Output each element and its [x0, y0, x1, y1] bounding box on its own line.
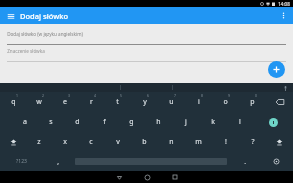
staticText: p: [250, 97, 255, 107]
staticText: i: [198, 97, 200, 107]
staticText: 9: [228, 93, 230, 98]
staticText: s: [49, 117, 53, 127]
button[interactable]: v: [104, 132, 131, 152]
staticText: b: [142, 137, 147, 147]
button[interactable]: Shift: [266, 132, 293, 152]
staticText: 7: [174, 93, 176, 98]
staticText: 1: [16, 93, 18, 98]
staticText: n: [169, 137, 174, 147]
button[interactable]: 8: [185, 92, 212, 112]
staticText: Dodaj słówko: [20, 11, 68, 21]
staticText: c: [89, 137, 93, 147]
staticText: w: [36, 97, 42, 107]
button[interactable]: a: [12, 112, 38, 132]
staticText: 2: [42, 93, 44, 98]
staticText: q: [11, 97, 16, 107]
button[interactable]: 5: [104, 92, 131, 112]
staticText: u: [169, 97, 174, 107]
staticText: r: [90, 97, 93, 107]
button[interactable]: Back: [105, 171, 133, 183]
staticText: m: [195, 137, 202, 147]
button[interactable]: Backspace: [266, 92, 293, 112]
button[interactable]: ?: [239, 132, 266, 152]
button[interactable]: s: [38, 112, 64, 132]
button[interactable]: x: [52, 132, 78, 152]
staticText: ?123: [16, 158, 27, 165]
staticText: x: [63, 137, 67, 147]
staticText: y: [143, 97, 147, 107]
button[interactable]: n: [158, 132, 185, 152]
button[interactable]: ,: [43, 152, 72, 171]
staticText: !: [225, 137, 227, 147]
button[interactable]: Voice input: [281, 84, 289, 92]
staticText: Znaczenie słówka: [7, 48, 45, 54]
staticText: h: [156, 117, 161, 127]
button[interactable]: Znaczenie słówka: [0, 48, 293, 62]
button[interactable]: Recent apps: [161, 171, 189, 183]
button[interactable]: m: [185, 132, 212, 152]
button[interactable]: 0: [239, 92, 266, 112]
staticText: d: [75, 117, 80, 127]
button[interactable]: More options: [277, 9, 290, 22]
button[interactable]: .: [230, 152, 259, 171]
button[interactable]: ?123: [0, 152, 43, 171]
staticText: 0: [255, 93, 257, 98]
button[interactable]: 1: [0, 92, 26, 112]
staticText: z: [37, 137, 41, 147]
button[interactable]: f: [91, 112, 118, 132]
button[interactable]: 2: [26, 92, 52, 112]
button[interactable]: Shift: [0, 132, 26, 152]
staticText: j: [185, 117, 187, 127]
button[interactable]: j: [172, 112, 199, 132]
button[interactable]: b: [131, 132, 158, 152]
staticText: e: [63, 97, 67, 107]
button[interactable]: h: [145, 112, 172, 132]
staticText: k: [211, 117, 215, 127]
staticText: o: [223, 97, 228, 107]
button[interactable]: d: [64, 112, 91, 132]
button[interactable]: 3: [52, 92, 78, 112]
button[interactable]: 9: [212, 92, 239, 112]
button[interactable]: c: [78, 132, 104, 152]
staticText: l: [239, 117, 241, 127]
staticText: a: [23, 117, 27, 127]
button[interactable]: 6: [131, 92, 158, 112]
staticText: ?: [251, 137, 255, 147]
staticText: 6: [147, 93, 149, 98]
button[interactable]: z: [26, 132, 52, 152]
staticText: Dodaj słówko (w języku angielskim): [7, 31, 83, 37]
button[interactable]: g: [118, 112, 145, 132]
button[interactable]: !: [212, 132, 239, 152]
staticText: 4: [94, 93, 96, 98]
button[interactable]: Add word: [268, 61, 285, 78]
button[interactable]: k: [199, 112, 226, 132]
staticText: 5: [120, 93, 122, 98]
button[interactable]: Emoji: [259, 152, 293, 171]
staticText: .: [244, 157, 246, 166]
staticText: f: [103, 117, 106, 127]
button[interactable]: Home: [133, 171, 161, 183]
button[interactable]: 7: [158, 92, 185, 112]
staticText: ,: [57, 157, 59, 166]
button[interactable]: 4: [78, 92, 104, 112]
staticText: 14:08: [278, 1, 290, 7]
button[interactable]: Dodaj słówko (w języku angielskim): [0, 31, 293, 45]
button[interactable]: Open navigation menu: [5, 10, 17, 22]
staticText: g: [129, 117, 134, 127]
button[interactable]: l: [226, 112, 253, 132]
staticText: t: [116, 97, 119, 107]
staticText: 3: [68, 93, 70, 98]
staticText: 8: [201, 93, 203, 98]
button[interactable]: Enter: [253, 112, 293, 132]
staticText: v: [116, 137, 120, 147]
